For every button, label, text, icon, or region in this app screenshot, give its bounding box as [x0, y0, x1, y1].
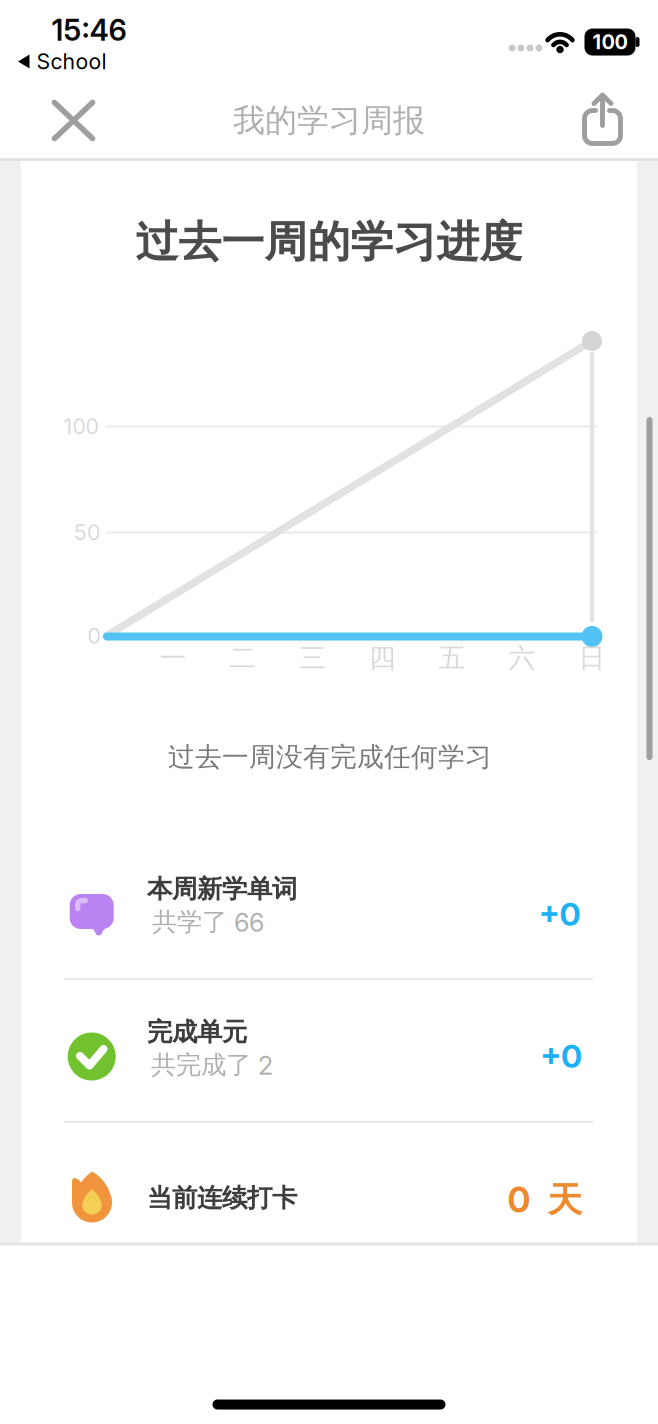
staticText: +0	[540, 1037, 582, 1075]
staticText: 三	[299, 642, 326, 674]
staticText: 50	[74, 520, 100, 545]
button[interactable]	[580, 91, 628, 147]
staticText: 我的学习周报	[233, 101, 425, 140]
staticText: 0	[87, 623, 100, 649]
button[interactable]: School	[17, 49, 106, 74]
staticText: 五	[439, 642, 466, 674]
staticText: 0	[507, 1180, 530, 1220]
staticText: +0	[538, 895, 580, 933]
staticText: 六	[509, 642, 536, 674]
staticText: 共完成了 2	[151, 1049, 273, 1080]
staticText: 当前连续打卡	[147, 1182, 297, 1213]
staticText: 二	[229, 642, 256, 674]
staticText: 100	[63, 414, 98, 439]
button[interactable]	[47, 96, 99, 144]
staticText: 完成单元	[147, 1016, 247, 1047]
staticText: 100	[592, 30, 627, 54]
staticText: 过去一周没有完成任何学习	[168, 741, 492, 773]
staticText: 15:46	[51, 13, 126, 47]
staticText: 本周新学单词	[147, 873, 297, 904]
staticText: 过去一周的学习进度	[135, 216, 522, 268]
staticText: School	[36, 49, 106, 74]
staticText: 共学了 66	[152, 906, 264, 937]
staticText: 日	[578, 642, 605, 674]
staticText: 一	[159, 642, 186, 674]
staticText: 天	[547, 1179, 582, 1221]
staticText: 四	[369, 642, 396, 674]
